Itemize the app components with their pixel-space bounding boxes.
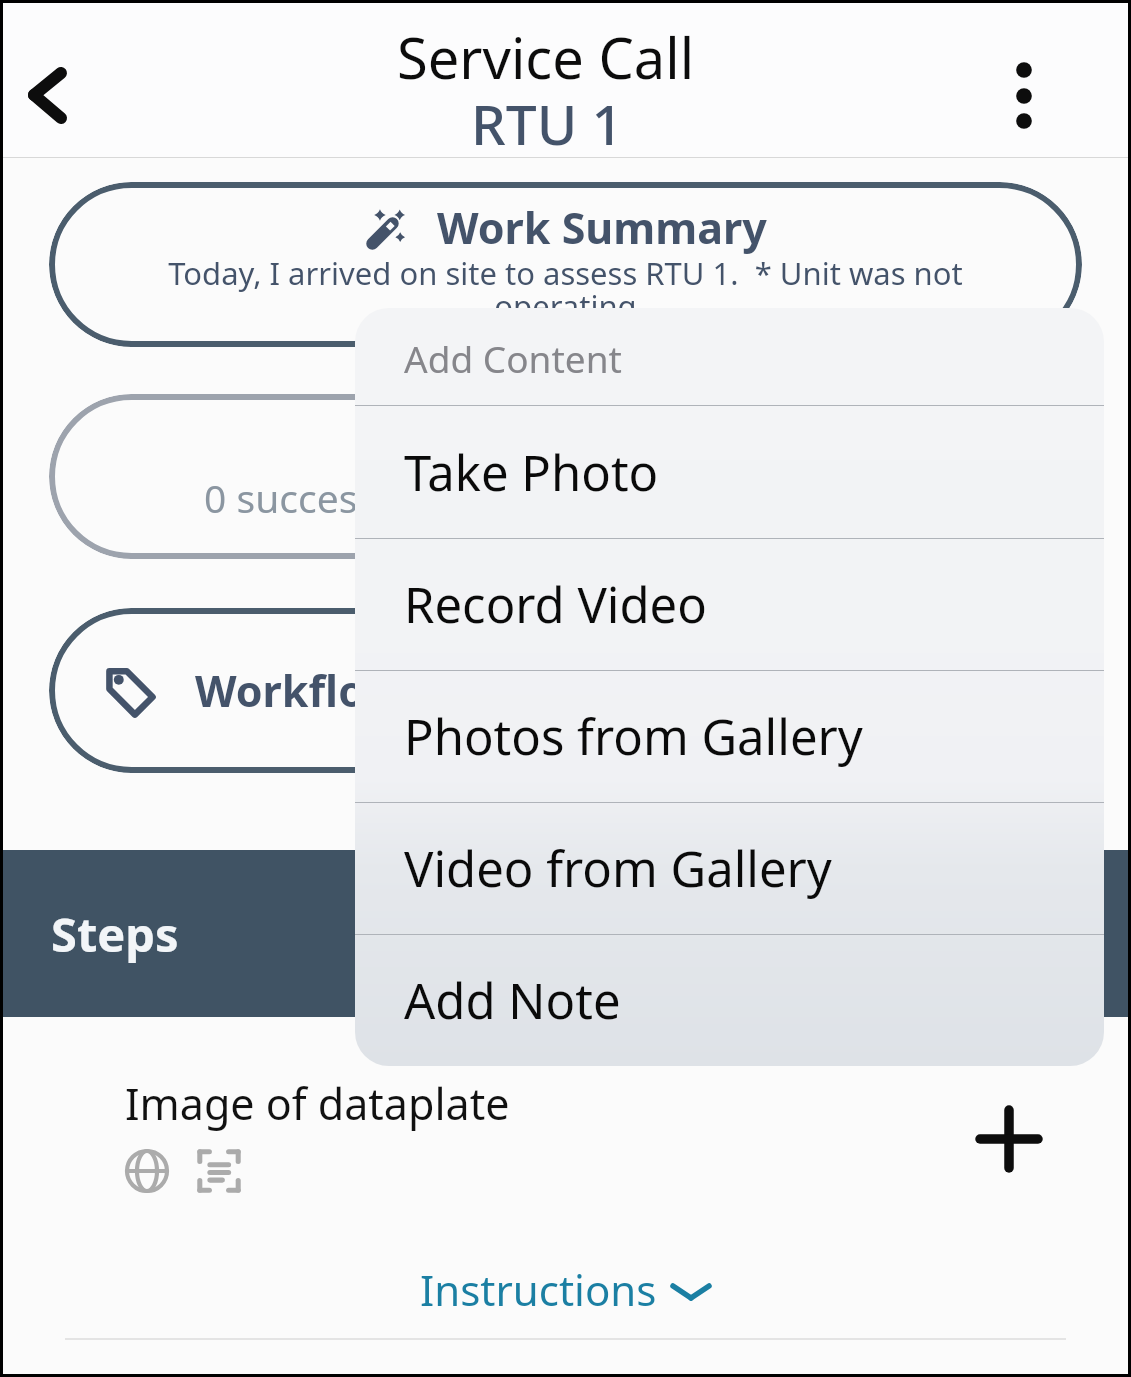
button[interactable]: 0 successful steps, 0 unsuccessful steps (49, 394, 1082, 559)
staticText: Take Photo (404, 439, 659, 506)
staticText: Instructions (420, 1261, 657, 1318)
staticText: Add Content (404, 333, 622, 383)
staticText: Work Summary (437, 198, 767, 257)
button[interactable]: Scan (195, 1147, 243, 1195)
staticText: Add Note (404, 967, 621, 1034)
staticText: Record Video (404, 571, 707, 638)
button[interactable]: Add (975, 1105, 1043, 1173)
button[interactable]: More options (989, 43, 1059, 121)
button[interactable]: Back (11, 45, 91, 121)
button[interactable]: Language (125, 1149, 169, 1193)
staticText: Service Call (397, 19, 695, 95)
button[interactable]: Work Summary (49, 182, 1082, 347)
staticText: 0 successful steps, 0 unsuccessful steps (204, 471, 928, 524)
button[interactable]: Instructions (420, 1261, 712, 1318)
button[interactable]: Video from Gallery (355, 803, 1104, 934)
staticText: RTU 1 (471, 86, 624, 161)
staticText: Image of dataplate (125, 1074, 510, 1133)
staticText: Video from Gallery (404, 835, 832, 902)
button[interactable]: Workflow Name (49, 608, 1082, 773)
button[interactable]: Add Note (355, 935, 1104, 1066)
button[interactable]: Record Video (355, 539, 1104, 670)
staticText: Today, I arrived on site to assess RTU 1… (109, 252, 1022, 327)
button[interactable]: Photos from Gallery (355, 671, 1104, 802)
button[interactable]: Take Photo (355, 406, 1104, 538)
staticText: Photos from Gallery (404, 703, 863, 770)
staticText: Steps (51, 902, 179, 966)
button[interactable]: Steps (3, 850, 1128, 1017)
staticText: Workflow Name (195, 661, 541, 720)
